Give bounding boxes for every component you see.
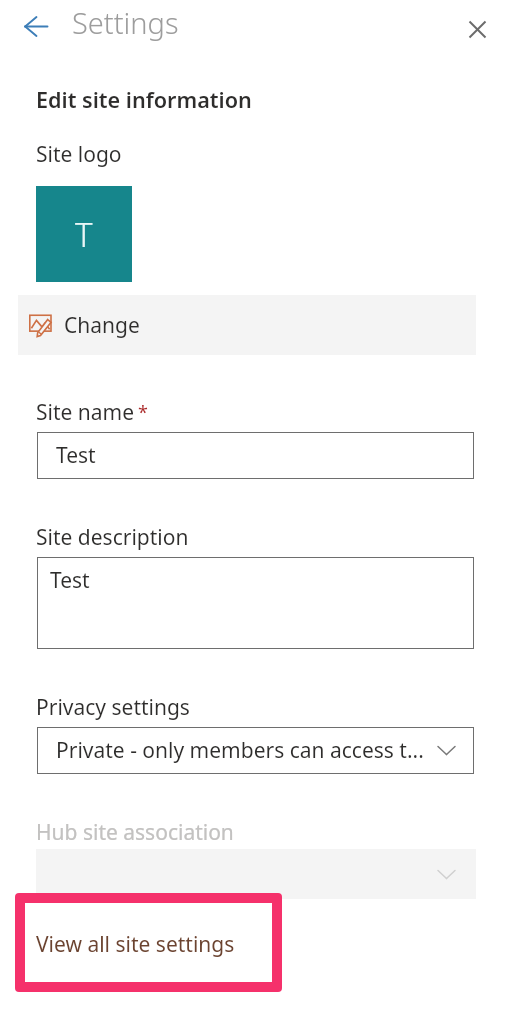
staticText: Private - only members can access t... bbox=[56, 736, 437, 765]
button[interactable]: Test bbox=[37, 432, 474, 479]
staticText: Site name bbox=[36, 398, 135, 427]
staticText: T bbox=[75, 212, 93, 257]
button[interactable]: Back bbox=[14, 4, 58, 48]
staticText: View all site settings bbox=[36, 930, 235, 959]
staticText: Site logo bbox=[36, 140, 122, 169]
staticText: Site description bbox=[36, 523, 189, 552]
button[interactable]: Private - only members can access t... bbox=[37, 727, 474, 774]
staticText: Test bbox=[56, 441, 96, 470]
button[interactable]: T bbox=[36, 186, 132, 282]
staticText: Test bbox=[50, 566, 90, 595]
button[interactable]: Close bbox=[455, 7, 499, 51]
button[interactable]: Change bbox=[18, 295, 476, 355]
staticText: Hub site association bbox=[36, 818, 234, 847]
staticText: Settings bbox=[72, 3, 179, 42]
button[interactable]: View all site settings bbox=[15, 893, 282, 992]
button[interactable]: Test bbox=[37, 557, 474, 649]
staticText: Privacy settings bbox=[36, 693, 190, 722]
staticText: Change bbox=[64, 311, 140, 340]
staticText: Edit site information bbox=[36, 85, 252, 114]
staticText: * bbox=[138, 400, 148, 425]
